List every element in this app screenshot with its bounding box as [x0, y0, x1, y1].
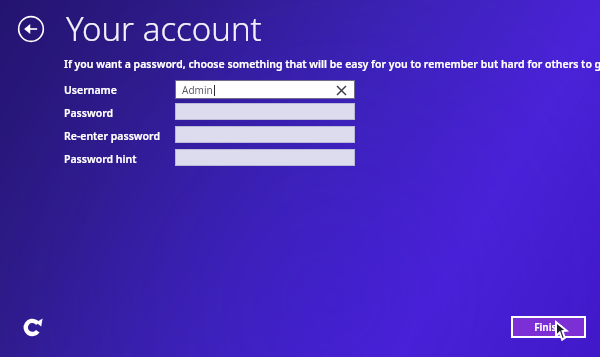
button[interactable]: [175, 126, 355, 143]
staticText: Your account: [66, 6, 262, 51]
button[interactable]: [175, 149, 355, 166]
staticText: Re-enter password: [64, 129, 160, 143]
button[interactable]: Ease of access: [22, 316, 44, 338]
button[interactable]: Finish: [511, 316, 586, 338]
staticText: Password: [64, 106, 114, 120]
button[interactable]: [175, 103, 355, 120]
staticText: Password hint: [64, 152, 137, 166]
button[interactable]: Back: [17, 15, 45, 43]
staticText: Username: [64, 83, 117, 97]
button[interactable]: Admin: [175, 80, 355, 99]
staticText: If you want a password, choose something…: [64, 57, 600, 71]
staticText: Admin: [182, 83, 213, 97]
button[interactable]: Clear text: [333, 82, 349, 98]
staticText: Finish: [534, 320, 563, 334]
